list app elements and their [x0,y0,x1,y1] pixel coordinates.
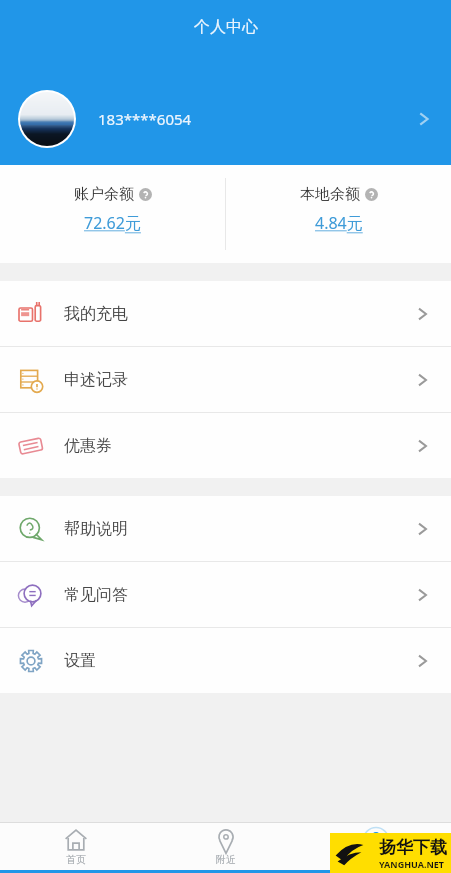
button[interactable]: 本地余额 [226,165,451,234]
staticText: 设置 [64,651,96,671]
staticText: 183****6054 [98,109,192,129]
staticText: 我的充电 [64,304,128,324]
staticText: 常见问答 [64,585,128,605]
staticText: 优惠券 [64,436,112,456]
button[interactable]: 我的充电 [0,281,451,346]
staticText: 账户余额 [74,185,134,204]
button[interactable]: 183****6054 [0,73,451,165]
staticText: 72.62元 [84,212,141,234]
button[interactable]: 优惠券 [0,413,451,478]
staticText: 本地余额 [300,185,360,204]
staticText: YANGHUA.NET [379,858,445,870]
button[interactable]: 附近 [151,823,301,870]
staticText: 4.84元 [315,212,363,234]
staticText: 帮助说明 [64,519,128,539]
button[interactable]: 首页 [0,823,151,870]
button[interactable]: 我的 [301,823,451,870]
staticText: 扬华下载 [379,837,447,858]
staticText: 首页 [66,853,86,866]
staticText: 我的 [366,853,386,866]
button[interactable]: 帮助说明 [0,496,451,561]
button[interactable]: 申述记录 [0,347,451,412]
staticText: 申述记录 [64,370,128,390]
button[interactable]: 常见问答 [0,562,451,627]
button[interactable]: 账户余额 [0,165,225,234]
staticText: 附近 [216,853,236,866]
button[interactable]: 设置 [0,628,451,693]
staticText: 个人中心 [194,17,258,37]
